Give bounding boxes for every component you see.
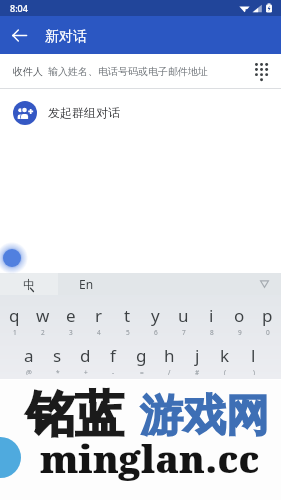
staticText: + — [84, 368, 88, 375]
button[interactable]: t — [113, 295, 141, 335]
button[interactable]: k — [211, 335, 239, 375]
staticText: u — [178, 304, 189, 327]
staticText: r — [95, 304, 103, 327]
button[interactable]: 发起群组对话 — [0, 89, 281, 136]
staticText: o — [234, 304, 245, 327]
staticText: 5 — [126, 328, 130, 335]
button[interactable]: w — [29, 295, 57, 335]
staticText: g — [136, 344, 147, 367]
button[interactable]: q — [0, 295, 29, 335]
button[interactable]: g — [127, 335, 155, 375]
staticText: 8 — [210, 328, 214, 335]
staticText: 铭蓝 — [26, 384, 124, 446]
staticText: y — [151, 304, 160, 327]
button[interactable]: r — [85, 295, 113, 335]
button[interactable]: 中 — [0, 273, 58, 295]
staticText: - — [112, 368, 115, 375]
staticText: 发起群组对话 — [48, 105, 120, 120]
button[interactable]: d — [71, 335, 99, 375]
staticText: w — [36, 304, 50, 327]
staticText: minglan.cc — [40, 432, 260, 484]
staticText: q — [9, 304, 20, 327]
staticText: e — [66, 304, 76, 327]
staticText: ( — [224, 368, 226, 375]
staticText: i — [209, 304, 214, 327]
staticText: h — [164, 344, 175, 367]
button[interactable]: u — [169, 295, 197, 335]
staticText: 9 — [238, 328, 242, 335]
staticText: ) — [253, 368, 255, 375]
staticText: f — [110, 344, 116, 367]
staticText: 6 — [154, 328, 158, 335]
staticText: 2 — [41, 328, 45, 335]
staticText: d — [80, 344, 91, 367]
staticText: s — [53, 344, 62, 367]
button[interactable]: l — [239, 335, 267, 375]
button[interactable]: 输入姓名、电话号码或电子邮件地址 — [48, 65, 208, 78]
staticText: * — [56, 368, 60, 375]
staticText: 7 — [182, 328, 186, 335]
button[interactable]: i — [197, 295, 225, 335]
staticText: p — [262, 304, 273, 327]
button[interactable]: y — [141, 295, 169, 335]
staticText: 新对话 — [45, 28, 87, 46]
staticText: 4 — [97, 328, 101, 335]
staticText: 3 — [69, 328, 73, 335]
staticText: a — [24, 344, 34, 367]
staticText: 游戏网 — [140, 389, 269, 443]
staticText: 8:04 — [10, 2, 28, 14]
staticText: 0 — [266, 328, 270, 335]
staticText: j — [195, 344, 200, 367]
staticText: En — [79, 276, 94, 292]
staticText: k — [220, 344, 230, 367]
button[interactable]: p — [253, 295, 281, 335]
button[interactable]: h — [155, 335, 183, 375]
button[interactable]: e — [57, 295, 85, 335]
button[interactable]: s — [43, 335, 71, 375]
button[interactable]: a — [14, 335, 43, 375]
staticText: 中 — [23, 277, 35, 292]
staticText: 1 — [13, 328, 17, 335]
button[interactable]: Back — [0, 16, 38, 54]
staticText: t — [124, 304, 131, 327]
staticText: # — [195, 368, 200, 375]
button[interactable]: Hide keyboard — [247, 273, 281, 295]
staticText: 收件人 — [13, 65, 43, 78]
button[interactable]: En — [58, 273, 247, 295]
button[interactable]: o — [225, 295, 253, 335]
button[interactable]: f — [99, 335, 127, 375]
staticText: / — [168, 368, 171, 375]
staticText: = — [140, 368, 144, 375]
staticText: @ — [26, 368, 32, 375]
button[interactable]: Dialpad — [250, 60, 272, 82]
staticText: l — [251, 344, 256, 367]
button[interactable]: j — [183, 335, 211, 375]
